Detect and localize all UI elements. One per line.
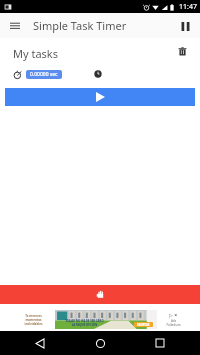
button[interactable]: Start timer bbox=[5, 88, 195, 106]
button[interactable]: Timer history bbox=[92, 68, 104, 80]
button[interactable]: My tasks bbox=[5, 40, 195, 86]
staticText: 0.00000 sec bbox=[30, 71, 58, 78]
button[interactable]: Stop bbox=[0, 285, 200, 304]
staticText: VIAJAR NO HA DE SER CARO LA MEJOR OPCIÓN bbox=[65, 319, 104, 327]
staticText: ▷ × bbox=[169, 312, 178, 319]
staticText: Ads Palladium bbox=[166, 319, 181, 327]
button[interactable]: Pause all timers bbox=[176, 17, 194, 35]
staticText: Te mereces momentos inolvidables bbox=[24, 314, 43, 326]
staticText: RESERVAR bbox=[137, 323, 150, 326]
staticText: Simple Task Timer bbox=[33, 18, 127, 33]
button[interactable]: Home bbox=[80, 331, 120, 355]
button[interactable]: Open navigation menu bbox=[6, 17, 24, 35]
button[interactable]: Recent apps bbox=[140, 331, 180, 355]
staticText: My tasks bbox=[13, 46, 59, 61]
button[interactable]: Back bbox=[20, 331, 60, 355]
staticText: 11:47 bbox=[179, 2, 197, 12]
button[interactable]: Advertisement bbox=[0, 308, 200, 331]
button[interactable]: 0.00000 sec bbox=[30, 71, 58, 78]
button[interactable]: Delete task list bbox=[174, 43, 190, 59]
